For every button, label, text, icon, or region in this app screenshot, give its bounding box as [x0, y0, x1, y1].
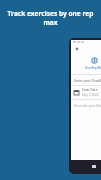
- staticText: Describe your Wo...: [74, 103, 101, 107]
- staticText: One Rep Max: [85, 66, 101, 70]
- staticText: Track exercises by one rep max: [6, 9, 95, 27]
- button[interactable]: Add: [74, 46, 80, 52]
- button[interactable]: One rep max: [91, 57, 98, 64]
- button[interactable]: Enter Date: [71, 86, 101, 99]
- staticText: Enter Date: [82, 88, 98, 92]
- button[interactable]: Home: [92, 165, 96, 168]
- staticText: Enter your Deadlift: [74, 78, 101, 83]
- button[interactable]: Describe your Wo...: [71, 100, 101, 110]
- staticText: May 3 2024: [82, 93, 99, 97]
- button[interactable]: Enter your Deadlift: [71, 75, 101, 85]
